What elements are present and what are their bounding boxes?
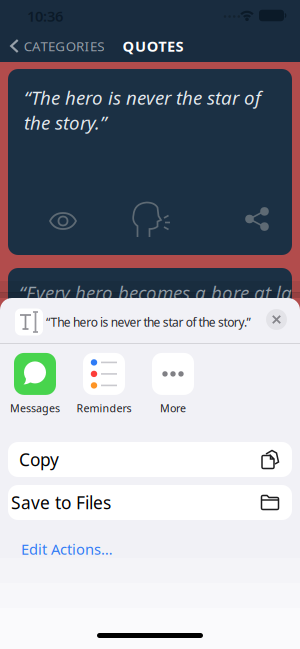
- button[interactable]: View quote: [49, 212, 77, 230]
- staticText: QUOTES: [122, 36, 183, 56]
- button[interactable]: Back to Categories: [10, 37, 104, 55]
- staticText: CATEGORIES: [24, 37, 104, 55]
- button[interactable]: More: [152, 353, 194, 415]
- button[interactable]: Share quote: [244, 207, 269, 231]
- staticText: Save to Files: [11, 491, 111, 514]
- button[interactable]: Close: [266, 309, 287, 330]
- button[interactable]: Edit Actions…: [21, 539, 113, 559]
- button[interactable]: Messages: [10, 353, 60, 415]
- button[interactable]: Reminders: [76, 353, 131, 415]
- staticText: More: [160, 401, 186, 415]
- staticText: 10:36: [27, 6, 63, 26]
- button[interactable]: Copy: [8, 442, 292, 477]
- button[interactable]: Save to Files: [8, 485, 292, 520]
- staticText: “The hero is never the star of the story…: [46, 314, 251, 330]
- staticText: Edit Actions…: [21, 539, 113, 559]
- staticText: Reminders: [76, 401, 131, 415]
- staticText: Copy: [19, 448, 59, 471]
- staticText: “The hero is never the star of the story…: [24, 85, 261, 135]
- staticText: “Every hero becomes a bore at last.”: [19, 280, 300, 305]
- staticText: Messages: [10, 401, 60, 415]
- button[interactable]: Speak quote: [129, 201, 170, 239]
